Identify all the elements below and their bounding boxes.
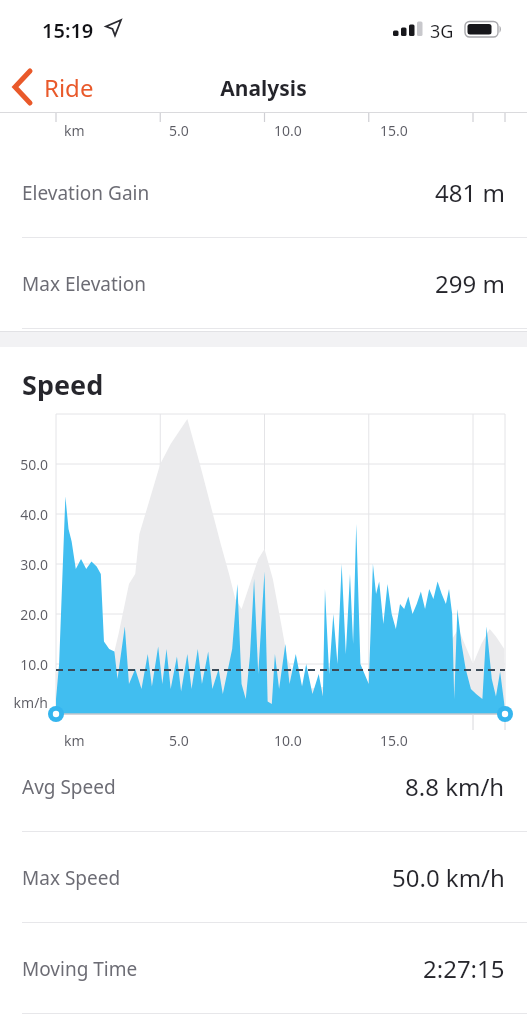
staticText: Elevation Gain	[22, 180, 150, 206]
staticText: 5.0	[169, 731, 189, 750]
staticText: km	[64, 731, 85, 750]
staticText: Max Speed	[22, 865, 121, 891]
staticText: 299 m	[435, 267, 505, 300]
staticText: Analysis	[0, 74, 527, 103]
staticText: 10.0	[274, 731, 302, 750]
staticText: 2:27:15	[423, 952, 505, 985]
staticText: 5.0	[169, 121, 189, 140]
staticText: km/h	[2, 693, 48, 712]
button[interactable]: Avg Speed	[0, 741, 527, 832]
staticText: 50.0	[2, 455, 48, 474]
staticText: 10.0	[274, 121, 302, 140]
staticText: 50.0 km/h	[392, 861, 505, 894]
staticText: 20.0	[2, 605, 48, 624]
staticText: 15:19	[42, 17, 94, 44]
staticText: 3G	[430, 19, 454, 44]
staticText: 481 m	[435, 176, 505, 209]
staticText: 30.0	[2, 555, 48, 574]
staticText: 10.0	[2, 655, 48, 674]
staticText: 15.0	[380, 731, 408, 750]
staticText: km	[64, 121, 85, 140]
staticText: Max Elevation	[22, 271, 146, 297]
button[interactable]: Max Elevation	[0, 238, 527, 329]
staticText: 40.0	[2, 505, 48, 524]
button[interactable]: Ride	[6, 64, 94, 110]
staticText: Moving Time	[22, 956, 138, 982]
staticText: Avg Speed	[22, 774, 116, 800]
staticText: 15.0	[380, 121, 408, 140]
button[interactable]: Elevation Gain	[0, 147, 527, 238]
staticText: Speed	[22, 366, 104, 403]
staticText: 8.8 km/h	[405, 770, 505, 803]
button[interactable]: Max Speed	[0, 832, 527, 923]
staticText: Ride	[44, 71, 94, 104]
button[interactable]: Moving Time	[0, 923, 527, 1014]
